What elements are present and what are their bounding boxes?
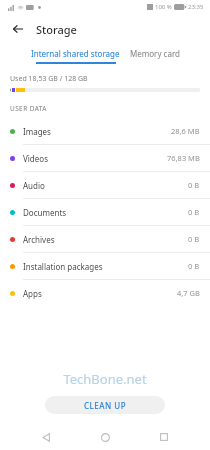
staticText: 76,83 MB: [167, 153, 200, 163]
button[interactable]: CLEAN UP: [45, 396, 165, 414]
staticText: 0 B: [188, 207, 200, 217]
staticText: 4,7 GB: [177, 288, 200, 298]
staticText: 28,6 MB: [171, 126, 200, 136]
button[interactable]: Archives: [0, 226, 210, 252]
button[interactable]: Videos: [0, 145, 210, 171]
staticText: Apps: [23, 288, 42, 299]
staticText: 23:35: [188, 3, 204, 11]
button[interactable]: Back: [33, 424, 59, 450]
button[interactable]: Back: [6, 17, 30, 41]
staticText: Used 18,53 GB / 128 GB: [10, 74, 88, 84]
button[interactable]: Recent apps: [151, 424, 177, 450]
staticText: Images: [23, 126, 51, 137]
button[interactable]: Home: [92, 424, 118, 450]
staticText: Memory card: [130, 48, 180, 59]
staticText: 0 B: [188, 180, 200, 190]
staticText: CLEAN UP: [84, 400, 127, 411]
button[interactable]: Apps: [0, 280, 210, 306]
button[interactable]: Memory card: [130, 48, 180, 64]
staticText: Installation packages: [23, 261, 103, 272]
button[interactable]: Audio: [0, 172, 210, 198]
staticText: Internal shared storage: [31, 48, 120, 59]
staticText: 100 %: [155, 3, 172, 11]
button[interactable]: Installation packages: [0, 253, 210, 279]
staticText: Documents: [23, 207, 67, 218]
staticText: Archives: [23, 234, 55, 245]
button[interactable]: Images: [0, 118, 210, 144]
staticText: 0 B: [188, 261, 200, 271]
button[interactable]: Internal shared storage: [31, 48, 120, 64]
staticText: Storage: [36, 22, 77, 37]
staticText: 0 B: [188, 234, 200, 244]
staticText: Audio: [23, 180, 45, 191]
staticText: Videos: [23, 153, 48, 164]
staticText: TechBone.net: [63, 370, 147, 388]
button[interactable]: Documents: [0, 199, 210, 225]
staticText: USER DATA: [10, 104, 47, 113]
